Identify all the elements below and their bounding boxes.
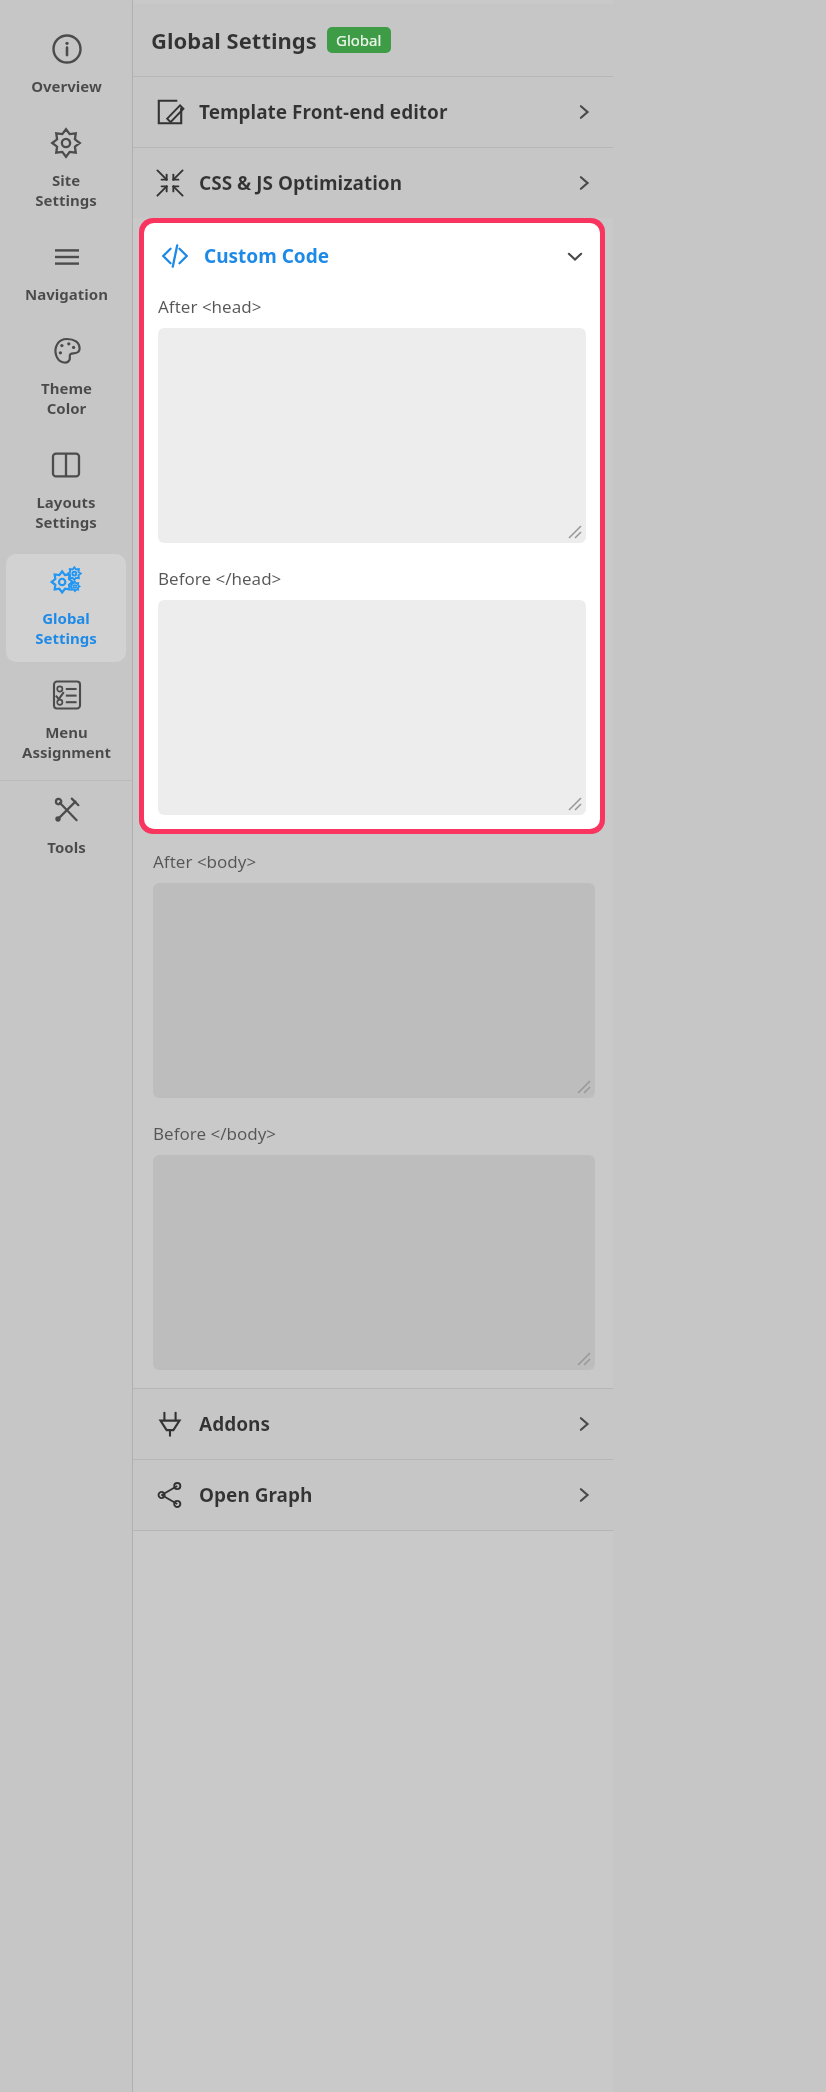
other: Collapse	[564, 245, 586, 267]
button[interactable]: CSS & JS Optimization	[133, 148, 613, 218]
staticText: Custom Code	[204, 243, 330, 269]
staticText: After <body>	[153, 850, 257, 873]
other: Open	[573, 1413, 595, 1435]
button[interactable]: Menu Assignment	[6, 670, 126, 776]
staticText: After <head>	[158, 295, 262, 318]
staticText: Global Settings	[35, 608, 97, 648]
button[interactable]: Layouts Settings	[6, 440, 126, 546]
staticText: Tools	[47, 837, 86, 857]
other: Open	[573, 1484, 595, 1506]
other: Open	[573, 101, 595, 123]
staticText: Global Settings	[151, 25, 317, 55]
button[interactable]: Site Settings	[6, 118, 126, 224]
button[interactable]: Addons	[133, 1389, 613, 1459]
button[interactable]: Overview	[6, 12, 126, 110]
button[interactable]: Theme Color	[6, 326, 126, 432]
staticText: Theme Color	[41, 378, 92, 418]
staticText: Addons	[199, 1411, 270, 1437]
staticText: Global	[336, 30, 382, 50]
button[interactable]: Template Front-end editor	[133, 77, 613, 147]
other: Open	[573, 172, 595, 194]
staticText: Layouts Settings	[35, 492, 97, 532]
button[interactable]: Navigation	[6, 232, 126, 318]
staticText: Site Settings	[35, 170, 97, 210]
button[interactable]: Tools	[6, 785, 126, 871]
staticText: Open Graph	[199, 1482, 313, 1508]
staticText: CSS & JS Optimization	[199, 170, 403, 196]
staticText: Menu Assignment	[22, 722, 111, 762]
staticText: Before </body>	[153, 1122, 277, 1145]
staticText: Navigation	[25, 284, 108, 304]
button[interactable]: Custom Code	[144, 223, 600, 289]
staticText: Overview	[31, 76, 102, 96]
button[interactable]: Open Graph	[133, 1460, 613, 1530]
staticText: Template Front-end editor	[199, 99, 448, 125]
button[interactable]: Global Settings	[6, 554, 126, 662]
staticText: Before </head>	[158, 567, 282, 590]
